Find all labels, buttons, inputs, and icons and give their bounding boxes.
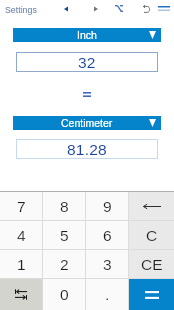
button[interactable]: 7 — [0, 192, 42, 220]
button[interactable]: 3 — [86, 250, 128, 278]
staticText: 7 — [17, 198, 26, 215]
staticText: . — [105, 286, 110, 303]
button[interactable]: . — [86, 279, 128, 310]
staticText: C — [146, 227, 158, 244]
button[interactable]: 6 — [86, 221, 128, 249]
staticText: Inch — [77, 29, 97, 41]
button[interactable]: Equals — [129, 279, 174, 310]
button[interactable]: Backspace — [129, 192, 174, 220]
staticText: 2 — [60, 256, 69, 273]
staticText: Centimeter — [61, 117, 113, 129]
button[interactable]: 2 — [43, 250, 85, 278]
staticText: CE — [141, 256, 163, 273]
button[interactable]: 5 — [43, 221, 85, 249]
button[interactable]: Settings — [0, 3, 41, 17]
button[interactable]: Next — [85, 0, 107, 18]
staticText: 6 — [103, 227, 112, 244]
button[interactable]: 0 — [43, 279, 85, 310]
button[interactable]: Menu — [153, 0, 174, 17]
button[interactable]: Option — [108, 0, 130, 17]
staticText: 8 — [60, 198, 69, 215]
staticText: 4 — [17, 227, 26, 244]
button[interactable]: 8 — [43, 192, 85, 220]
button[interactable]: C — [129, 221, 174, 249]
button[interactable]: Swap units — [0, 279, 42, 310]
button[interactable]: CE — [129, 250, 174, 278]
staticText: 0 — [60, 286, 69, 303]
button[interactable]: 32 — [16, 52, 158, 72]
button[interactable]: 9 — [86, 192, 128, 220]
staticText: 81.28 — [67, 141, 107, 158]
staticText: 32 — [78, 54, 96, 71]
button[interactable]: 81.28 — [16, 139, 158, 159]
button[interactable]: 4 — [0, 221, 42, 249]
button[interactable]: Centimeter — [13, 116, 161, 130]
staticText: 1 — [17, 256, 26, 273]
button[interactable]: Previous — [55, 0, 77, 18]
button[interactable]: Undo — [135, 0, 157, 18]
button[interactable]: Inch — [13, 28, 161, 42]
staticText: 5 — [60, 227, 69, 244]
staticText: 9 — [103, 198, 112, 215]
staticText: 3 — [103, 256, 112, 273]
button[interactable]: 1 — [0, 250, 42, 278]
other: Backspace — [143, 204, 161, 209]
